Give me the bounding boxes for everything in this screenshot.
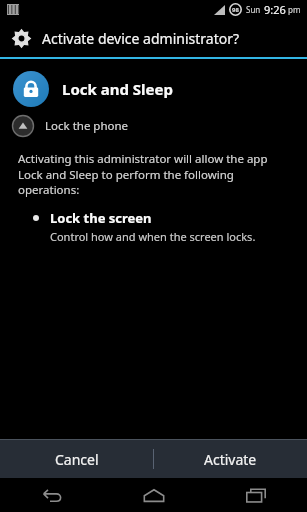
- button[interactable]: Recent apps: [205, 478, 307, 512]
- staticText: Lock the screen: [50, 209, 152, 227]
- other: Collapse: [12, 115, 34, 137]
- staticText: Sun: [246, 4, 261, 15]
- button[interactable]: Cancel: [0, 440, 153, 478]
- button[interactable]: Back: [0, 478, 103, 512]
- button[interactable]: Activate: [154, 440, 307, 478]
- staticText: Cancel: [55, 450, 99, 469]
- staticText: pm: [288, 4, 301, 15]
- staticText: Activating this administrator will allow…: [18, 151, 293, 197]
- staticText: Activate device administrator?: [42, 29, 240, 48]
- button[interactable]: Collapse: [12, 115, 307, 137]
- staticText: Lock the phone: [45, 118, 129, 134]
- staticText: 9:26: [264, 2, 286, 17]
- staticText: Control how and when the screen locks.: [50, 229, 256, 244]
- button[interactable]: Home: [103, 478, 205, 512]
- staticText: Lock and Sleep: [62, 79, 173, 99]
- staticText: Activate: [204, 450, 257, 469]
- staticText: 98: [232, 6, 239, 14]
